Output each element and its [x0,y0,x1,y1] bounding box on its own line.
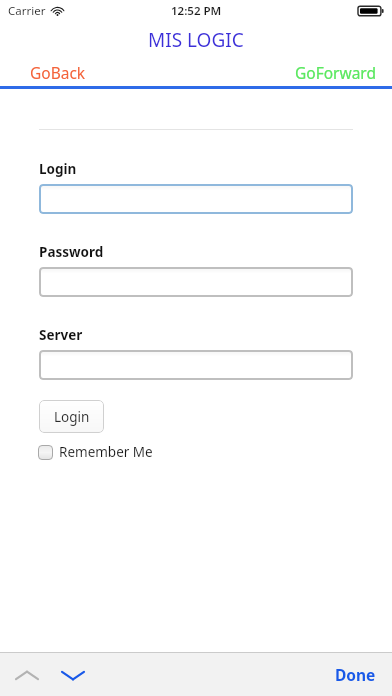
button[interactable]: Next field [56,658,90,692]
staticText: Password [39,243,104,261]
staticText: Server [39,326,83,344]
staticText: Remember Me [59,443,153,461]
button[interactable] [39,267,353,297]
staticText: 12:52 PM [171,3,222,19]
staticText: MIS LOGIC [148,27,244,53]
button[interactable]: Remember Me [38,440,161,464]
staticText: Login [39,160,77,178]
button[interactable]: Done [319,658,392,691]
staticText: GoBack [30,62,86,83]
button[interactable]: Login [39,400,104,433]
staticText: GoForward [295,62,376,83]
staticText: Login [54,408,90,426]
button[interactable] [39,184,353,214]
button[interactable]: Previous field [10,658,44,692]
staticText: Done [335,664,376,685]
button[interactable]: GoBack [0,60,98,85]
staticText: Carrier [8,3,46,19]
button[interactable] [39,350,353,380]
button[interactable]: GoForward [283,60,392,85]
